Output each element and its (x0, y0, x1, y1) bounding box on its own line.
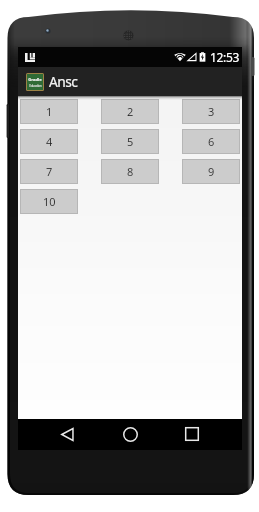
staticText: 2 (127, 104, 134, 119)
button[interactable]: Back (55, 422, 79, 446)
staticText: 6 (208, 134, 215, 149)
staticText: 9 (208, 164, 215, 179)
staticText: 12:53 (210, 49, 239, 65)
button[interactable]: 7 (21, 160, 77, 183)
button[interactable]: 10 (21, 190, 77, 213)
staticText: 8 (127, 164, 134, 179)
button[interactable]: 9 (183, 160, 239, 183)
staticText: 3 (208, 104, 215, 119)
staticText: 5 (127, 134, 134, 149)
staticText: 1 (46, 104, 53, 119)
button[interactable]: 4 (21, 130, 77, 153)
button[interactable]: 3 (183, 100, 239, 123)
staticText: 10 (43, 194, 56, 209)
staticText: Ansc (49, 72, 78, 91)
button[interactable]: 2 (102, 100, 158, 123)
button[interactable]: 1 (21, 100, 77, 123)
button[interactable]: 8 (102, 160, 158, 183)
staticText: 7 (46, 164, 53, 179)
button[interactable]: 6 (183, 130, 239, 153)
button[interactable]: Recents (180, 422, 204, 446)
button[interactable]: Home (118, 422, 142, 446)
button[interactable]: 5 (102, 130, 158, 153)
staticText: Education (29, 84, 42, 88)
staticText: 4 (46, 134, 53, 149)
staticText: Gradle (28, 77, 42, 83)
